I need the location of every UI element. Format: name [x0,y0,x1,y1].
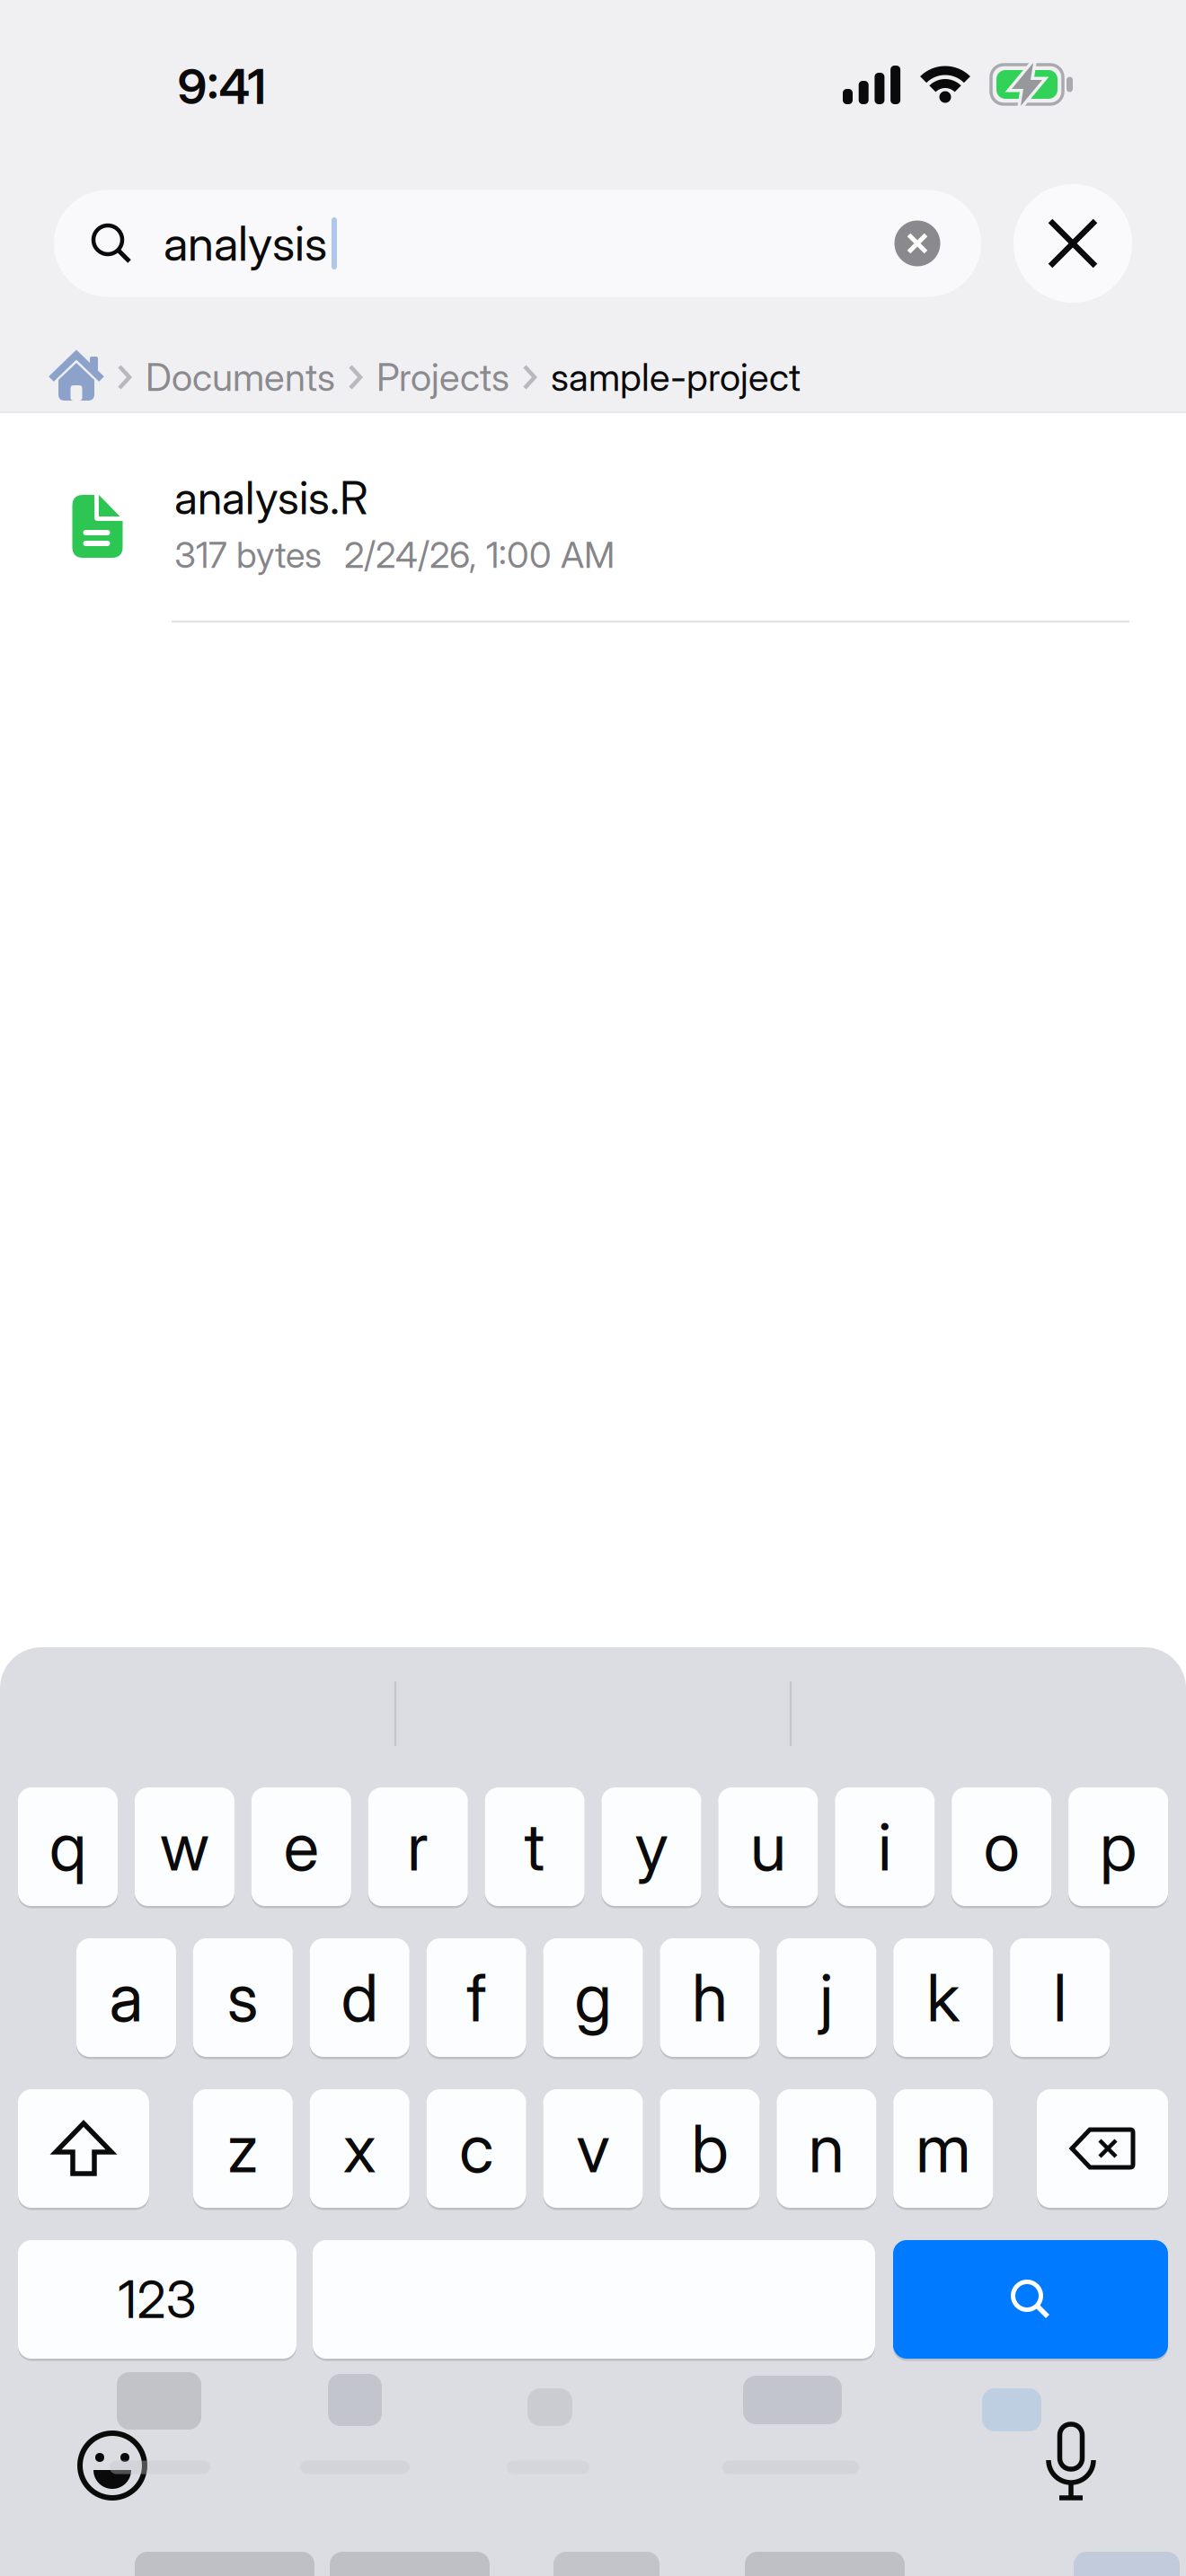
button[interactable]: Projects [376,354,509,400]
button[interactable]: Clear text [894,221,940,266]
staticText: x [343,2109,376,2188]
button[interactable]: Search [893,2239,1168,2360]
button[interactable]: d [310,1937,410,2058]
staticText: o [984,1807,1020,1886]
button[interactable]: e [251,1786,351,1907]
button[interactable]: i [835,1786,935,1907]
staticText: k [927,1958,960,2037]
staticText: p [1100,1807,1137,1886]
button[interactable]: j [777,1937,876,2058]
button[interactable]: b [660,2088,760,2209]
button[interactable]: m [893,2088,993,2209]
staticText: n [809,2109,844,2188]
button[interactable]: Documents [146,354,335,400]
staticText: c [459,2109,493,2188]
button[interactable]: g [543,1937,643,2058]
staticText: t [524,1807,545,1886]
button[interactable]: Space [313,2239,875,2360]
staticText: e [284,1807,319,1886]
button[interactable]: s [193,1937,293,2058]
staticText: u [750,1807,786,1886]
staticText: 123 [118,2268,196,2330]
button[interactable]: u [718,1786,818,1907]
staticText: sample-project [551,354,801,400]
staticText: analysis [164,215,327,272]
button[interactable]: t [485,1786,585,1907]
staticText: f [466,1958,486,2037]
staticText: j [820,1958,833,2037]
button[interactable]: Close search [1013,184,1132,303]
button[interactable]: 123 [18,2239,296,2360]
button[interactable]: f [427,1937,526,2058]
button[interactable]: a [76,1937,176,2058]
button[interactable]: Dictate [1042,2419,1100,2507]
button[interactable]: q [18,1786,118,1907]
button[interactable]: y [602,1786,701,1907]
button[interactable]: z [193,2088,293,2209]
button[interactable]: w [135,1786,234,1907]
button[interactable]: Delete [1037,2088,1168,2209]
staticText: w [160,1807,209,1886]
button[interactable]: analysis.R [0,449,1186,620]
button[interactable]: h [660,1937,760,2058]
staticText: l [1053,1958,1067,2037]
button[interactable]: Home [49,352,104,402]
staticText: 317 bytes [174,533,322,577]
button[interactable]: l [1010,1937,1110,2058]
button[interactable]: p [1068,1786,1168,1907]
staticText: b [691,2109,728,2188]
button[interactable]: v [543,2088,643,2209]
button[interactable]: Emoji [71,2424,154,2507]
staticText: g [575,1958,611,2037]
staticText: q [49,1807,86,1886]
staticText: v [576,2109,610,2188]
staticText: z [227,2109,259,2188]
staticText: i [878,1807,892,1886]
staticText: d [341,1958,378,2037]
button[interactable]: Shift [18,2088,149,2209]
staticText: a [109,1958,143,2037]
staticText: y [635,1807,668,1886]
staticText: Projects [376,354,509,400]
button[interactable]: n [777,2088,876,2209]
staticText: 9:41 [177,57,266,116]
button[interactable]: o [952,1786,1051,1907]
button[interactable]: r [368,1786,468,1907]
staticText: h [692,1958,728,2037]
staticText: m [916,2109,971,2188]
button[interactable]: c [427,2088,526,2209]
button[interactable]: x [310,2088,410,2209]
staticText: s [227,1958,259,2037]
staticText: 2/24/26, 1:00 AM [344,533,615,577]
staticText: Documents [146,354,335,400]
staticText: r [407,1807,429,1886]
button[interactable]: k [893,1937,993,2058]
staticText: analysis.R [174,471,368,525]
